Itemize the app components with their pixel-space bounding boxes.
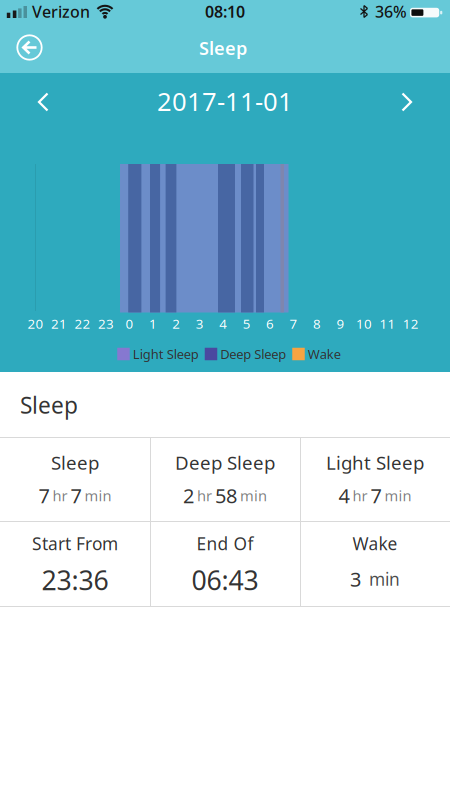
- staticText: min: [384, 486, 411, 505]
- staticText: Light Sleep: [133, 345, 199, 363]
- staticText: 2017-11-01: [157, 84, 293, 118]
- staticText: 23:36: [41, 562, 108, 598]
- staticText: 7: [70, 482, 81, 509]
- staticText: Sleep: [20, 390, 78, 420]
- staticText: 22: [74, 315, 90, 332]
- staticText: Wake: [352, 532, 397, 555]
- staticText: hr: [52, 486, 67, 505]
- staticText: 7: [38, 482, 49, 509]
- staticText: Sleep: [199, 36, 247, 60]
- staticText: 3: [350, 566, 361, 592]
- button[interactable]: Next day: [387, 82, 427, 122]
- staticText: 10: [356, 315, 372, 332]
- staticText: 20: [28, 315, 44, 332]
- staticText: 23: [98, 315, 114, 332]
- staticText: 12: [403, 315, 419, 332]
- staticText: 2: [183, 482, 194, 509]
- staticText: 7: [370, 482, 381, 509]
- staticText: Sleep: [51, 450, 99, 475]
- staticText: min: [84, 486, 111, 505]
- staticText: Start From: [32, 532, 118, 555]
- staticText: 4: [219, 315, 227, 332]
- staticText: Verizon: [32, 1, 90, 22]
- staticText: End Of: [196, 532, 253, 555]
- staticText: 1: [149, 315, 157, 332]
- staticText: 9: [336, 315, 344, 332]
- staticText: 3: [196, 315, 204, 332]
- staticText: hr: [197, 486, 212, 505]
- staticText: min: [369, 567, 400, 590]
- staticText: Deep Sleep: [175, 450, 275, 475]
- staticText: hr: [352, 486, 367, 505]
- staticText: 08:10: [205, 1, 245, 22]
- staticText: 06:43: [191, 562, 258, 598]
- staticText: Deep Sleep: [220, 345, 286, 363]
- button[interactable]: Previous day: [23, 82, 63, 122]
- staticText: 36%: [375, 1, 407, 22]
- staticText: 7: [290, 315, 298, 332]
- staticText: 8: [313, 315, 321, 332]
- staticText: 2: [172, 315, 180, 332]
- staticText: 6: [266, 315, 274, 332]
- staticText: 5: [243, 315, 251, 332]
- staticText: Light Sleep: [326, 450, 424, 475]
- staticText: 58: [215, 482, 237, 509]
- staticText: 4: [338, 482, 349, 509]
- button[interactable]: Back: [11, 29, 47, 65]
- staticText: min: [240, 486, 267, 505]
- staticText: Wake: [308, 345, 341, 363]
- staticText: 21: [51, 315, 67, 332]
- staticText: 0: [125, 315, 133, 332]
- staticText: 11: [379, 315, 395, 332]
